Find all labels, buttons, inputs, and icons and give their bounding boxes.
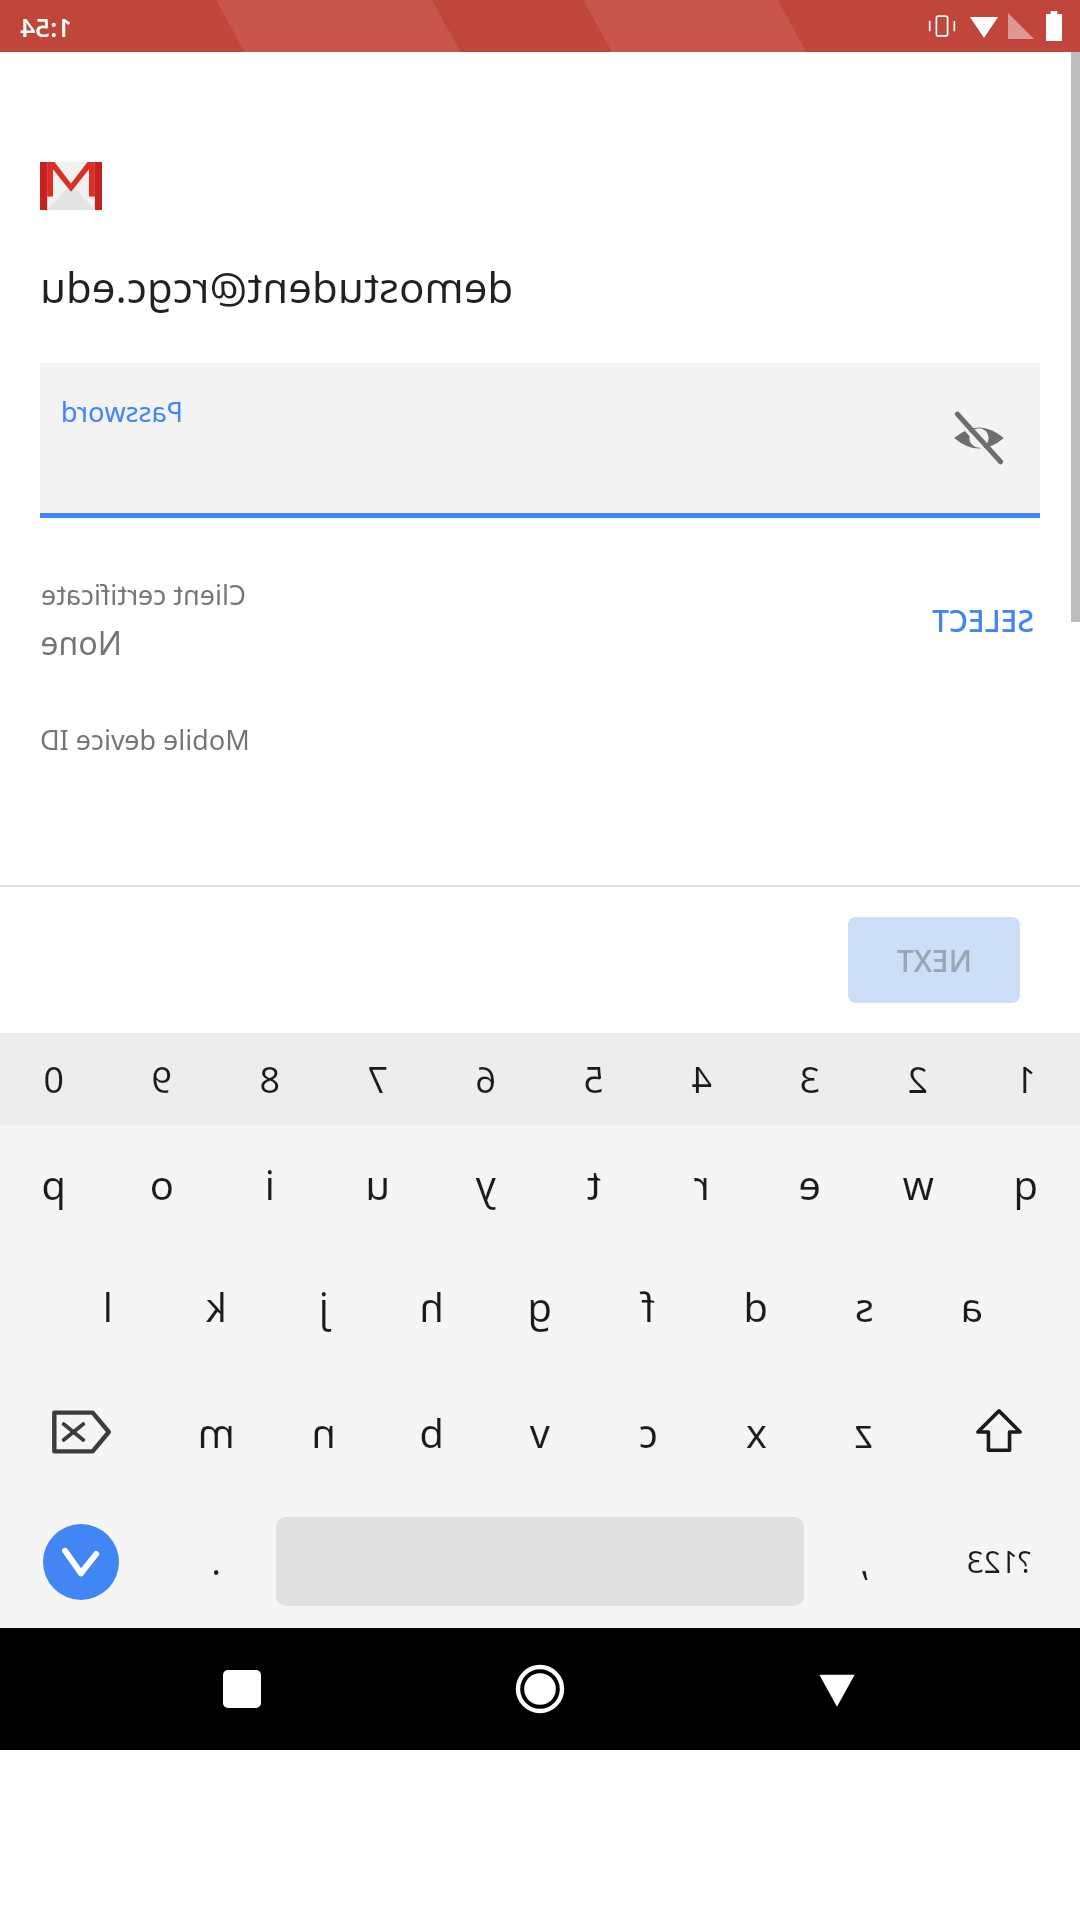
- staticText: o: [149, 1157, 174, 1211]
- button[interactable]: d: [702, 1243, 810, 1369]
- staticText: 2: [907, 1055, 928, 1104]
- button[interactable]: Backspace: [0, 1369, 162, 1495]
- button[interactable]: p: [0, 1125, 108, 1243]
- staticText: d: [743, 1279, 768, 1333]
- button[interactable]: Back: [782, 1634, 892, 1744]
- staticText: Client certificate: [40, 576, 246, 613]
- staticText: e: [798, 1157, 821, 1211]
- button[interactable]: a: [918, 1243, 1026, 1369]
- button[interactable]: z: [810, 1369, 918, 1495]
- button[interactable]: i: [216, 1125, 324, 1243]
- staticText: 1:54: [20, 9, 72, 44]
- button[interactable]: e: [756, 1125, 864, 1243]
- staticText: l: [102, 1279, 113, 1333]
- button[interactable]: 5: [540, 1033, 648, 1125]
- staticText: u: [365, 1157, 390, 1211]
- staticText: z: [854, 1405, 873, 1459]
- button[interactable]: 4: [648, 1033, 756, 1125]
- staticText: k: [205, 1279, 227, 1333]
- button[interactable]: 3: [756, 1033, 864, 1125]
- button[interactable]: NEXT: [848, 917, 1020, 1003]
- button[interactable]: Hide password: [948, 407, 1010, 469]
- staticText: 9: [151, 1055, 172, 1104]
- button[interactable]: Recent apps: [187, 1634, 297, 1744]
- button[interactable]: g: [486, 1243, 594, 1369]
- staticText: g: [527, 1279, 552, 1333]
- staticText: h: [419, 1279, 444, 1333]
- button[interactable]: y: [432, 1125, 540, 1243]
- staticText: c: [638, 1405, 658, 1459]
- staticText: Mobile device ID: [40, 721, 1040, 758]
- staticText: 8: [259, 1055, 280, 1104]
- staticText: demostudent@rcgc.edu: [40, 258, 1040, 315]
- button[interactable]: l: [54, 1243, 162, 1369]
- staticText: f: [641, 1279, 655, 1333]
- staticText: q: [1013, 1157, 1038, 1211]
- staticText: y: [475, 1157, 496, 1211]
- button[interactable]: w: [864, 1125, 972, 1243]
- staticText: NEXT: [896, 940, 972, 981]
- staticText: 3: [799, 1055, 820, 1104]
- staticText: 5: [583, 1055, 604, 1104]
- staticText: .: [211, 1537, 221, 1586]
- button[interactable]: s: [810, 1243, 918, 1369]
- button[interactable]: x: [702, 1369, 810, 1495]
- button[interactable]: .: [162, 1495, 270, 1628]
- staticText: 6: [475, 1055, 496, 1104]
- staticText: 1: [1015, 1055, 1036, 1104]
- staticText: s: [854, 1279, 874, 1333]
- button[interactable]: 7: [324, 1033, 432, 1125]
- staticText: v: [529, 1405, 550, 1459]
- button[interactable]: SELECT: [40, 576, 1040, 665]
- button[interactable]: 0: [0, 1033, 108, 1125]
- button[interactable]: q: [972, 1125, 1080, 1243]
- button[interactable]: ?123: [918, 1495, 1080, 1628]
- staticText: m: [197, 1405, 235, 1459]
- button[interactable]: 1: [972, 1033, 1080, 1125]
- staticText: p: [41, 1157, 66, 1211]
- staticText: t: [586, 1157, 601, 1211]
- staticText: w: [902, 1157, 934, 1211]
- button[interactable]: Home: [485, 1634, 595, 1744]
- button[interactable]: o: [108, 1125, 216, 1243]
- button[interactable]: 2: [864, 1033, 972, 1125]
- button[interactable]: n: [270, 1369, 378, 1495]
- button[interactable]: v: [486, 1369, 594, 1495]
- button[interactable]: t: [540, 1125, 648, 1243]
- staticText: ,: [859, 1537, 869, 1586]
- button[interactable]: u: [324, 1125, 432, 1243]
- button[interactable]: j: [270, 1243, 378, 1369]
- button[interactable]: k: [162, 1243, 270, 1369]
- staticText: SELECT: [932, 600, 1034, 641]
- staticText: j: [318, 1279, 329, 1333]
- button[interactable]: b: [378, 1369, 486, 1495]
- button[interactable]: f: [594, 1243, 702, 1369]
- button[interactable]: Shift: [918, 1369, 1080, 1495]
- button[interactable]: r: [648, 1125, 756, 1243]
- button[interactable]: SELECT: [928, 592, 1038, 649]
- button[interactable]: h: [378, 1243, 486, 1369]
- staticText: a: [960, 1279, 983, 1333]
- staticText: None: [40, 621, 122, 665]
- staticText: r: [693, 1157, 710, 1211]
- button[interactable]: c: [594, 1369, 702, 1495]
- button[interactable]: ,: [810, 1495, 918, 1628]
- staticText: 7: [367, 1055, 388, 1104]
- button[interactable]: 6: [432, 1033, 540, 1125]
- button[interactable]: Password: [40, 363, 1040, 518]
- staticText: x: [745, 1405, 767, 1459]
- button[interactable]: 8: [216, 1033, 324, 1125]
- staticText: i: [264, 1157, 275, 1211]
- staticText: Password: [60, 393, 183, 430]
- button[interactable]: m: [162, 1369, 270, 1495]
- staticText: n: [311, 1405, 336, 1459]
- staticText: ?123: [966, 1541, 1031, 1582]
- button[interactable]: 9: [108, 1033, 216, 1125]
- button[interactable]: Enter: [0, 1495, 162, 1628]
- staticText: 0: [43, 1055, 64, 1104]
- staticText: b: [419, 1405, 444, 1459]
- staticText: 4: [691, 1055, 712, 1104]
